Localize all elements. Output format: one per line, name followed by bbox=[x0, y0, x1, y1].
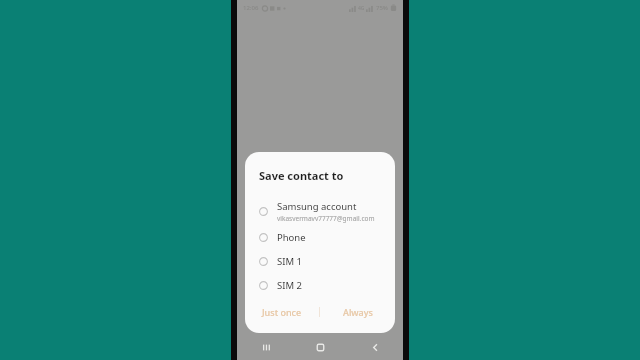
staticText: Save contact to bbox=[259, 168, 344, 183]
staticText: Samsung account bbox=[277, 200, 357, 213]
button[interactable]: Back bbox=[348, 335, 403, 360]
staticText: Phone bbox=[277, 231, 306, 244]
button[interactable]: Home bbox=[293, 335, 348, 360]
staticText: SIM 1 bbox=[277, 255, 302, 268]
staticText: vikasvermavv77777@gmail.com bbox=[277, 214, 375, 223]
button[interactable]: SIM 1 bbox=[245, 249, 395, 273]
button[interactable]: Samsung account bbox=[245, 197, 395, 225]
staticText: Just once bbox=[262, 306, 302, 318]
button[interactable]: Always bbox=[320, 299, 395, 325]
button[interactable]: Recent apps bbox=[237, 335, 293, 360]
staticText: 12:06 bbox=[243, 4, 259, 12]
staticText: Always bbox=[343, 306, 373, 318]
staticText: SIM 2 bbox=[277, 279, 302, 292]
button[interactable]: SIM 2 bbox=[245, 273, 395, 297]
staticText: 75% bbox=[376, 4, 388, 12]
staticText: 4G bbox=[358, 5, 365, 12]
button[interactable]: Just once bbox=[245, 299, 319, 325]
button[interactable]: Phone bbox=[245, 225, 395, 249]
